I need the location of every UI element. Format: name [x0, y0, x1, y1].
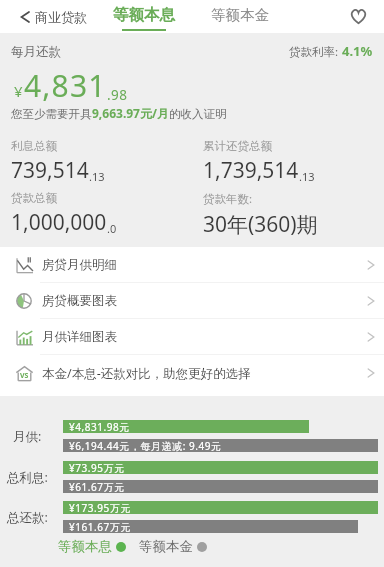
staticText: 房贷月供明细 — [42, 257, 117, 273]
staticText: 等额本息 — [58, 538, 112, 555]
staticText: 1,000,000 — [11, 208, 107, 237]
staticText: ¥161.67万元 — [69, 520, 131, 533]
staticText: 等额本金 — [139, 538, 193, 555]
button[interactable]: 商业贷款 — [0, 9, 91, 25]
staticText: 利息总额 — [11, 139, 57, 153]
staticText: 9,663.97元/月 — [92, 105, 169, 121]
staticText: 本金/本息-还款对比，助您更好的选择 — [42, 365, 251, 382]
staticText: VS — [20, 371, 29, 381]
staticText: .13 — [299, 169, 315, 184]
staticText: 房贷概要图表 — [42, 293, 117, 309]
staticText: 月供详细图表 — [42, 329, 117, 345]
staticText: 总还款: — [7, 509, 48, 526]
staticText: 总利息: — [7, 469, 48, 486]
staticText: 4.1% — [342, 42, 373, 60]
staticText: 等额本息 — [113, 5, 175, 25]
button[interactable]: 等额本金 — [211, 8, 269, 26]
staticText: 您至少需要开具 — [11, 107, 92, 121]
staticText: ¥61.67万元 — [69, 480, 125, 493]
staticText: ¥173.95万元 — [69, 501, 131, 514]
staticText: 贷款利率: — [289, 44, 339, 60]
staticText: 739,514 — [11, 156, 89, 185]
staticText: .13 — [89, 169, 105, 184]
staticText: ¥6,194.44元，每月递减: 9.49元 — [69, 439, 222, 452]
staticText: 4,831 — [24, 65, 107, 106]
staticText: ¥73.95万元 — [69, 461, 125, 474]
button[interactable]: 房贷月供明细 — [0, 247, 384, 282]
staticText: 贷款年数: — [203, 191, 253, 207]
staticText: 每月还款 — [11, 44, 61, 60]
staticText: 累计还贷总额 — [203, 139, 272, 153]
staticText: 月供: — [13, 428, 42, 445]
staticText: .98 — [107, 86, 128, 104]
staticText: .0 — [107, 221, 117, 236]
button[interactable]: VS — [0, 355, 384, 391]
staticText: 30年(360)期 — [203, 210, 318, 239]
button[interactable]: 月供详细图表 — [0, 319, 384, 354]
staticText: ¥4,831.98元 — [69, 420, 130, 433]
staticText: ¥ — [14, 81, 23, 101]
staticText: 等额本金 — [211, 6, 269, 24]
staticText: 的收入证明 — [169, 107, 227, 121]
button[interactable]: 等额本息 — [113, 4, 175, 30]
staticText: 1,739,514 — [203, 156, 299, 185]
button[interactable]: Favorite — [343, 1, 373, 31]
staticText: 贷款总额 — [11, 191, 57, 205]
button[interactable]: 房贷概要图表 — [0, 283, 384, 318]
staticText: 商业贷款 — [35, 9, 87, 25]
